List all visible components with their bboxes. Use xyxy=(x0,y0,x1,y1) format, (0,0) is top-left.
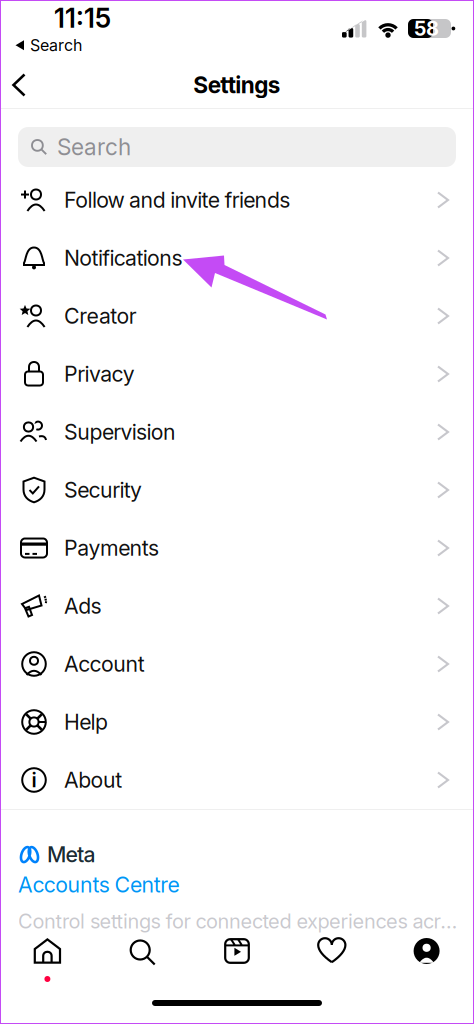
button[interactable]: Account xyxy=(0,635,474,693)
staticText: Follow and invite friends xyxy=(64,187,290,213)
staticText: Account xyxy=(64,651,145,677)
button[interactable]: Privacy xyxy=(0,345,474,403)
staticText: Supervision xyxy=(64,419,176,445)
button[interactable]: Payments xyxy=(0,519,474,577)
button[interactable]: Profile xyxy=(379,938,474,982)
button[interactable]: Accounts Centre xyxy=(18,867,180,897)
staticText: Creator xyxy=(64,303,137,329)
button[interactable]: i xyxy=(0,751,474,809)
button[interactable]: Reels xyxy=(190,938,284,982)
staticText: Search xyxy=(30,36,82,55)
button[interactable]: Activity xyxy=(284,938,379,982)
staticText: About xyxy=(64,767,122,793)
button[interactable]: Notifications xyxy=(0,229,474,287)
staticText: Security xyxy=(64,477,142,503)
staticText: Meta xyxy=(47,842,95,867)
staticText: i xyxy=(31,768,36,792)
button[interactable]: Supervision xyxy=(0,403,474,461)
staticText: Privacy xyxy=(64,361,135,387)
staticText: 8 xyxy=(426,17,439,40)
staticText: 5 xyxy=(414,17,426,40)
button[interactable]: Creator xyxy=(0,287,474,345)
staticText: Accounts Centre xyxy=(18,872,180,897)
staticText: Search xyxy=(57,134,131,160)
button[interactable]: Help xyxy=(0,693,474,751)
staticText: Notifications xyxy=(64,245,183,271)
button[interactable]: Search xyxy=(95,938,190,982)
staticText: Control settings for connected experienc… xyxy=(18,909,456,933)
button[interactable]: Ads xyxy=(0,577,474,635)
staticText: Settings xyxy=(193,72,281,98)
button[interactable]: Search xyxy=(0,109,474,171)
button[interactable]: Follow and invite friends xyxy=(0,171,474,229)
staticText: Ads xyxy=(64,593,102,619)
button[interactable]: Security xyxy=(0,461,474,519)
staticText: Payments xyxy=(64,535,159,561)
button[interactable]: Back xyxy=(0,63,26,107)
staticText: 11:15 xyxy=(54,2,111,34)
staticText: Help xyxy=(64,709,108,735)
button[interactable]: Home xyxy=(0,938,95,982)
